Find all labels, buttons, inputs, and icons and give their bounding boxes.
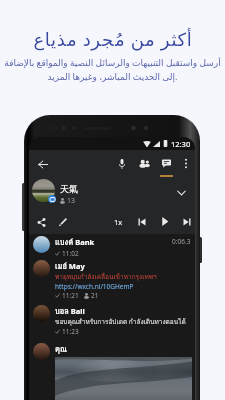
staticText: 11:23 (62, 327, 79, 336)
staticText: أرسل واستقبل التنبيهات والرسائل النصية و… (4, 56, 221, 83)
staticText: 13 (67, 196, 76, 206)
button[interactable]: People (133, 150, 155, 177)
staticText: https://wxch.nl/10GHemP (55, 282, 134, 291)
staticText: 1x (114, 217, 123, 227)
button[interactable]: Collapse (173, 185, 189, 201)
button[interactable]: บอล Ball (29, 305, 195, 336)
staticText: แบงค์ Bank (55, 236, 95, 248)
staticText: 天氣 (60, 183, 78, 194)
button[interactable]: Play (157, 214, 172, 229)
staticText: ขอบคุณสำหรับการอัปเดต กำลังเดินทางตอนได้ (55, 317, 186, 327)
button[interactable]: Playback speed (111, 214, 126, 229)
staticText: เมย์ May (55, 260, 85, 272)
staticText: พายุหมุนกำลังเคลื่อนเข้าหากรุงเทพฯ (55, 272, 157, 282)
button[interactable]: Edit (55, 214, 71, 230)
button[interactable]: Next (179, 214, 194, 229)
staticText: 21 (91, 291, 99, 300)
button[interactable]: คุณ (29, 343, 195, 400)
button[interactable]: Chats (155, 150, 177, 177)
staticText: 11:21 (62, 291, 79, 300)
staticText: 11:02 (62, 249, 79, 258)
button[interactable]: Share (33, 214, 49, 230)
staticText: บอล Ball (55, 305, 85, 317)
staticText: คุณ (55, 343, 67, 355)
button[interactable]: More options (177, 150, 195, 177)
button[interactable]: Voice message (111, 150, 133, 177)
button[interactable]: Back (34, 155, 52, 173)
button[interactable]: แบงค์ Bank (29, 236, 195, 258)
staticText: 0:06.3 (172, 237, 191, 246)
button[interactable]: เมย์ May (29, 260, 195, 300)
staticText: 12:30 (171, 139, 191, 149)
staticText: أكثر من مُجرد مذياع (33, 27, 193, 52)
button[interactable]: Previous (134, 214, 149, 229)
